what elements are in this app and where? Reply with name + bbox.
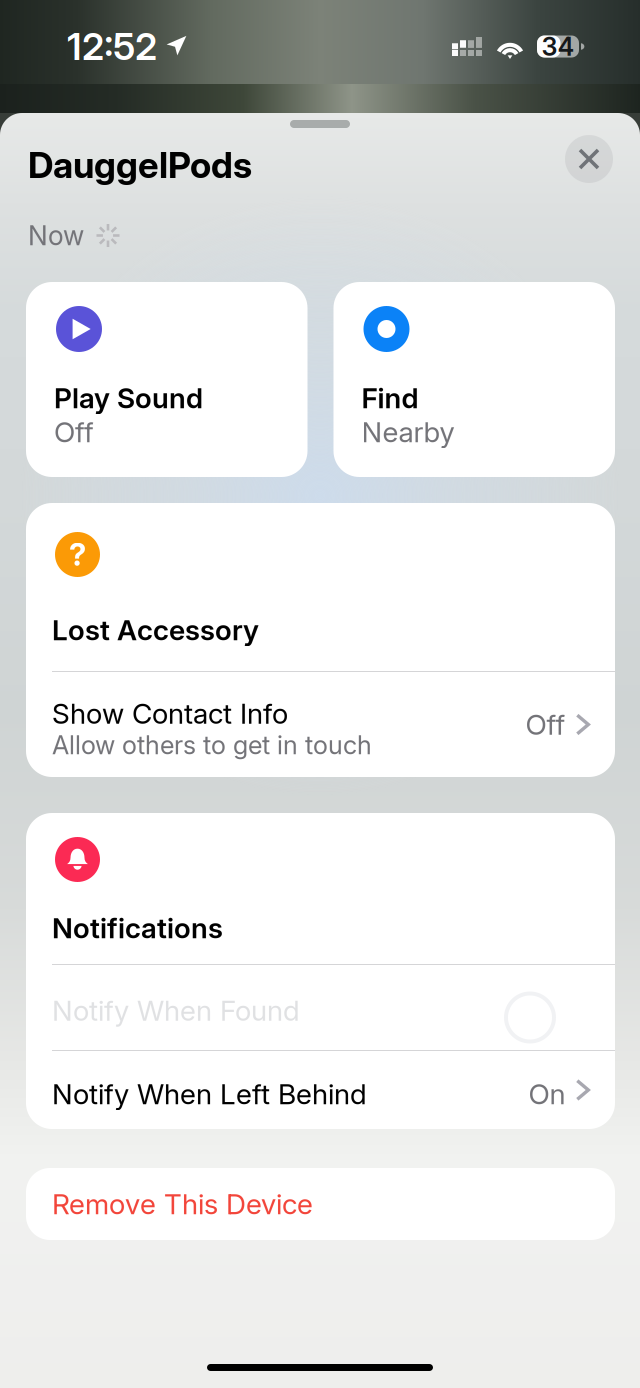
button[interactable]: Notify When Left Behind (26, 1051, 615, 1129)
button[interactable]: Notify When Found (26, 965, 615, 1050)
staticText: Notifications (52, 911, 223, 945)
staticText: 12:52 (67, 24, 157, 69)
staticText: Notify When Found (52, 994, 300, 1027)
staticText: Nearby (361, 415, 454, 449)
staticText: Remove This Device (52, 1187, 313, 1221)
button[interactable]: Find (333, 282, 615, 477)
staticText: Off (54, 415, 94, 449)
staticText: Notify When Left Behind (52, 1077, 367, 1111)
staticText: 34 (541, 31, 574, 62)
staticText: Play Sound (54, 381, 203, 415)
staticText: DauggelPods (28, 143, 252, 187)
button[interactable]: Show Contact Info (26, 672, 615, 777)
staticText: ? (69, 536, 86, 573)
button[interactable]: Remove This Device (26, 1168, 615, 1240)
button[interactable]: Close (565, 147, 613, 195)
staticText: Lost Accessory (52, 613, 259, 647)
staticText: Allow others to get in touch (52, 730, 372, 760)
staticText: Off (526, 708, 566, 741)
staticText: On (529, 1077, 566, 1111)
staticText: Now (28, 219, 84, 252)
staticText: Find (361, 381, 418, 415)
staticText: Show Contact Info (52, 697, 288, 731)
button[interactable]: Play Sound (26, 282, 307, 477)
